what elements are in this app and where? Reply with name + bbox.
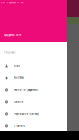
staticText: Aiuto — [13, 64, 20, 67]
staticText: Metodi di pagamento — [13, 88, 38, 91]
staticText: Impostazioni e privacy — [13, 112, 38, 115]
staticText: 9:41 Vodafone IT 4G — [1, 1, 24, 4]
staticText: Obiettivi — [13, 100, 23, 103]
button[interactable]: Impostazioni e privacy — [0, 108, 67, 120]
staticText: Notifiche — [13, 76, 23, 79]
staticText: Il carrello — [13, 124, 25, 127]
button[interactable]: Aiuto — [0, 60, 67, 72]
button[interactable]: Metodi di pagamento — [0, 84, 67, 96]
button[interactable]: Notifiche — [0, 72, 67, 84]
staticText: Personale — [4, 51, 15, 54]
staticText: xyz@gmail.com — [4, 34, 21, 37]
button[interactable]: Il carrello — [0, 120, 67, 132]
button[interactable]: Obiettivi — [0, 96, 67, 108]
